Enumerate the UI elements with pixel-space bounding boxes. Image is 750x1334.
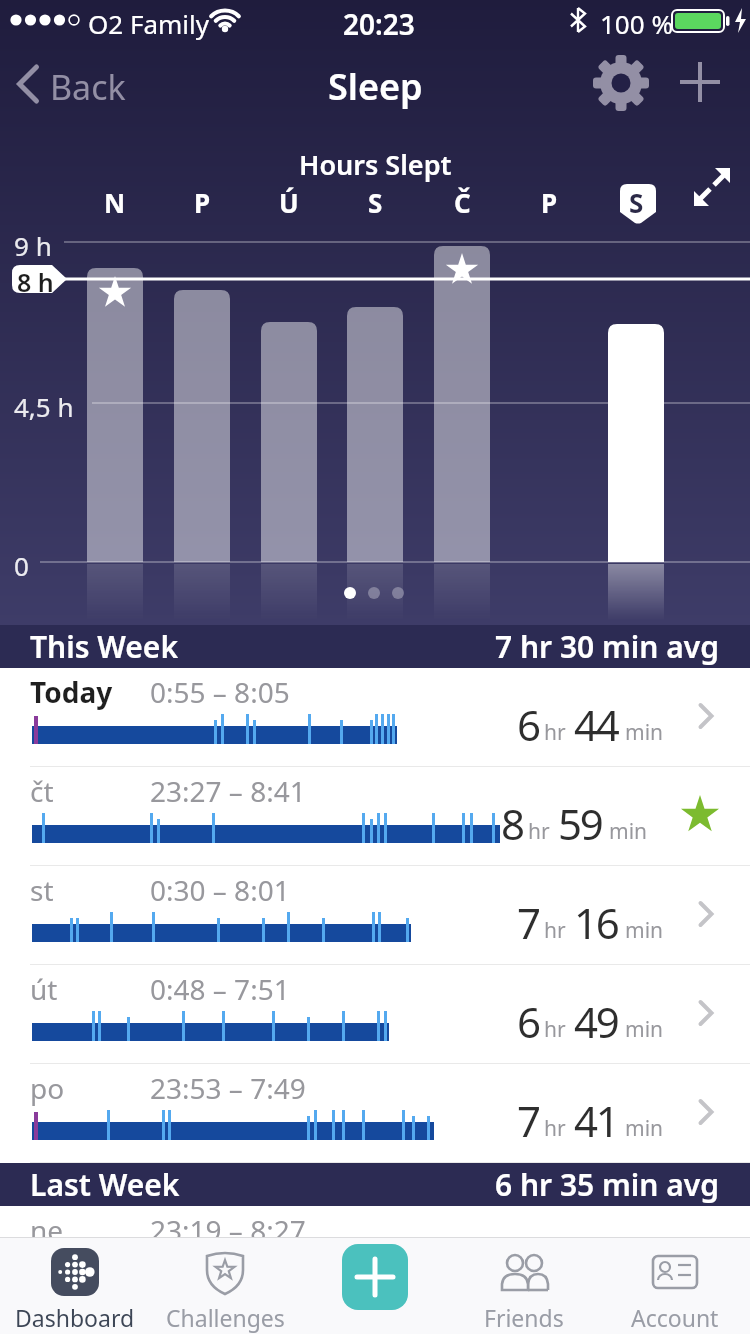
- staticText: Ú: [279, 185, 299, 220]
- staticText: 41: [574, 1092, 618, 1149]
- staticText: 23:27 – 8:41: [150, 772, 306, 810]
- button[interactable]: P: [519, 185, 579, 220]
- staticText: Back: [50, 64, 126, 110]
- button[interactable]: Account: [615, 1248, 735, 1333]
- staticText: This Week: [30, 626, 179, 667]
- button[interactable]: [676, 58, 724, 106]
- staticText: Today: [30, 673, 113, 711]
- staticText: 7: [517, 1092, 539, 1149]
- button[interactable]: st: [0, 866, 750, 965]
- button[interactable]: [590, 52, 652, 114]
- staticText: Friends: [484, 1302, 564, 1333]
- staticText: 23:53 – 7:49: [150, 1069, 306, 1107]
- button[interactable]: Back: [8, 56, 148, 108]
- button[interactable]: Friends: [464, 1248, 584, 1333]
- button[interactable]: [342, 1244, 408, 1310]
- staticText: ne: [30, 1211, 64, 1237]
- button[interactable]: S: [606, 185, 666, 220]
- button[interactable]: Č: [432, 185, 492, 220]
- staticText: Account: [631, 1302, 719, 1333]
- staticText: 16: [574, 894, 618, 951]
- staticText: út: [30, 970, 58, 1008]
- staticText: min: [625, 718, 664, 747]
- staticText: 4,5 h: [14, 389, 74, 424]
- button[interactable]: út: [0, 965, 750, 1064]
- staticText: 100 %: [600, 6, 673, 41]
- staticText: 8 h: [17, 265, 54, 299]
- staticText: S: [368, 185, 383, 220]
- staticText: Last Week: [30, 1164, 180, 1205]
- staticText: 7 hr 30 min avg: [495, 626, 720, 667]
- staticText: čt: [30, 772, 54, 810]
- staticText: Hours Slept: [299, 146, 452, 183]
- button[interactable]: čt: [0, 767, 750, 866]
- button[interactable]: S: [345, 185, 405, 220]
- button[interactable]: P: [172, 185, 232, 220]
- staticText: 0:30 – 8:01: [150, 871, 290, 909]
- staticText: 8: [501, 795, 523, 852]
- staticText: Sleep: [328, 62, 423, 111]
- staticText: P: [194, 185, 211, 220]
- staticText: hr: [544, 1114, 566, 1143]
- staticText: 0: [14, 548, 29, 583]
- staticText: hr: [528, 817, 550, 846]
- button[interactable]: ne: [0, 1206, 750, 1237]
- staticText: 7: [517, 894, 539, 951]
- staticText: min: [625, 1114, 664, 1143]
- staticText: 49: [574, 993, 618, 1050]
- staticText: min: [625, 916, 664, 945]
- staticText: O2 Family: [88, 6, 210, 41]
- staticText: 0:55 – 8:05: [150, 673, 290, 711]
- staticText: 44: [574, 696, 618, 753]
- button[interactable]: [684, 158, 740, 214]
- staticText: Challenges: [166, 1302, 285, 1333]
- button[interactable]: Ú: [259, 185, 319, 220]
- staticText: 0:48 – 7:51: [150, 970, 290, 1008]
- staticText: hr: [544, 916, 566, 945]
- staticText: 23:19 – 8:27: [150, 1211, 306, 1237]
- staticText: hr: [544, 1015, 566, 1044]
- button[interactable]: Today: [0, 668, 750, 767]
- staticText: 59: [558, 795, 602, 852]
- staticText: 6: [517, 696, 539, 753]
- staticText: Dashboard: [15, 1302, 135, 1333]
- button[interactable]: Dashboard: [5, 1248, 145, 1333]
- staticText: hr: [544, 718, 566, 747]
- staticText: N: [104, 185, 126, 220]
- staticText: st: [30, 871, 54, 909]
- staticText: min: [609, 817, 648, 846]
- staticText: Č: [454, 185, 471, 220]
- staticText: po: [30, 1069, 65, 1107]
- button[interactable]: N: [85, 185, 145, 220]
- staticText: 9 h: [14, 228, 52, 263]
- staticText: P: [541, 185, 558, 220]
- staticText: 20:23: [343, 5, 415, 43]
- staticText: S: [629, 185, 644, 220]
- button[interactable]: po: [0, 1064, 750, 1163]
- staticText: 6: [517, 993, 539, 1050]
- staticText: 6 hr 35 min avg: [495, 1164, 720, 1205]
- staticText: min: [625, 1015, 664, 1044]
- button[interactable]: Challenges: [150, 1248, 300, 1333]
